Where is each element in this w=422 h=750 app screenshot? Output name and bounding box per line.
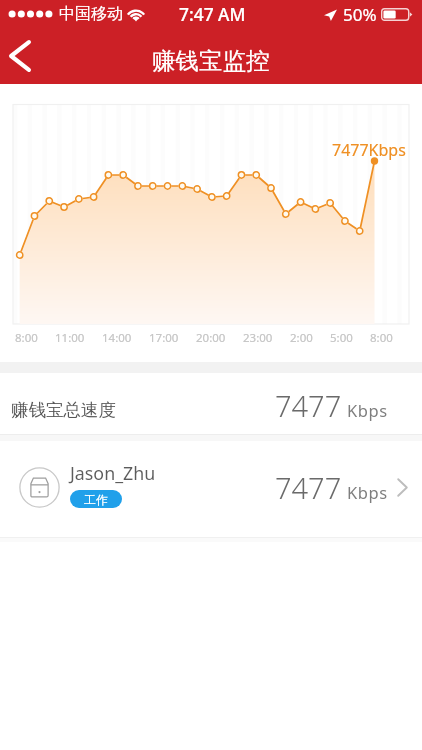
staticText: 17:00: [149, 330, 179, 346]
button[interactable]: Jason_Zhu: [0, 441, 422, 533]
staticText: 中国移动: [59, 4, 123, 24]
staticText: Kbps: [347, 481, 388, 503]
staticText: 赚钱宝总速度: [11, 399, 116, 421]
staticText: 7477Kbps: [332, 139, 406, 161]
staticText: 2:00: [290, 330, 313, 346]
staticText: 7477: [275, 386, 342, 425]
staticText: Kbps: [347, 399, 388, 421]
staticText: 11:00: [55, 330, 85, 346]
staticText: 23:00: [243, 330, 273, 346]
staticText: 20:00: [196, 330, 226, 346]
staticText: 工作: [84, 492, 108, 507]
button[interactable]: 赚钱宝总速度: [0, 375, 422, 436]
staticText: 14:00: [102, 330, 132, 346]
staticText: 8:00: [15, 330, 38, 346]
staticText: 50%: [343, 3, 377, 26]
staticText: 5:00: [330, 330, 353, 346]
staticText: 赚钱宝监控: [152, 46, 270, 76]
staticText: 7477: [275, 468, 342, 507]
button[interactable]: Back: [2, 42, 46, 84]
staticText: Jason_Zhu: [70, 461, 156, 485]
staticText: 8:00: [370, 330, 393, 346]
staticText: 7:47 AM: [179, 2, 246, 26]
